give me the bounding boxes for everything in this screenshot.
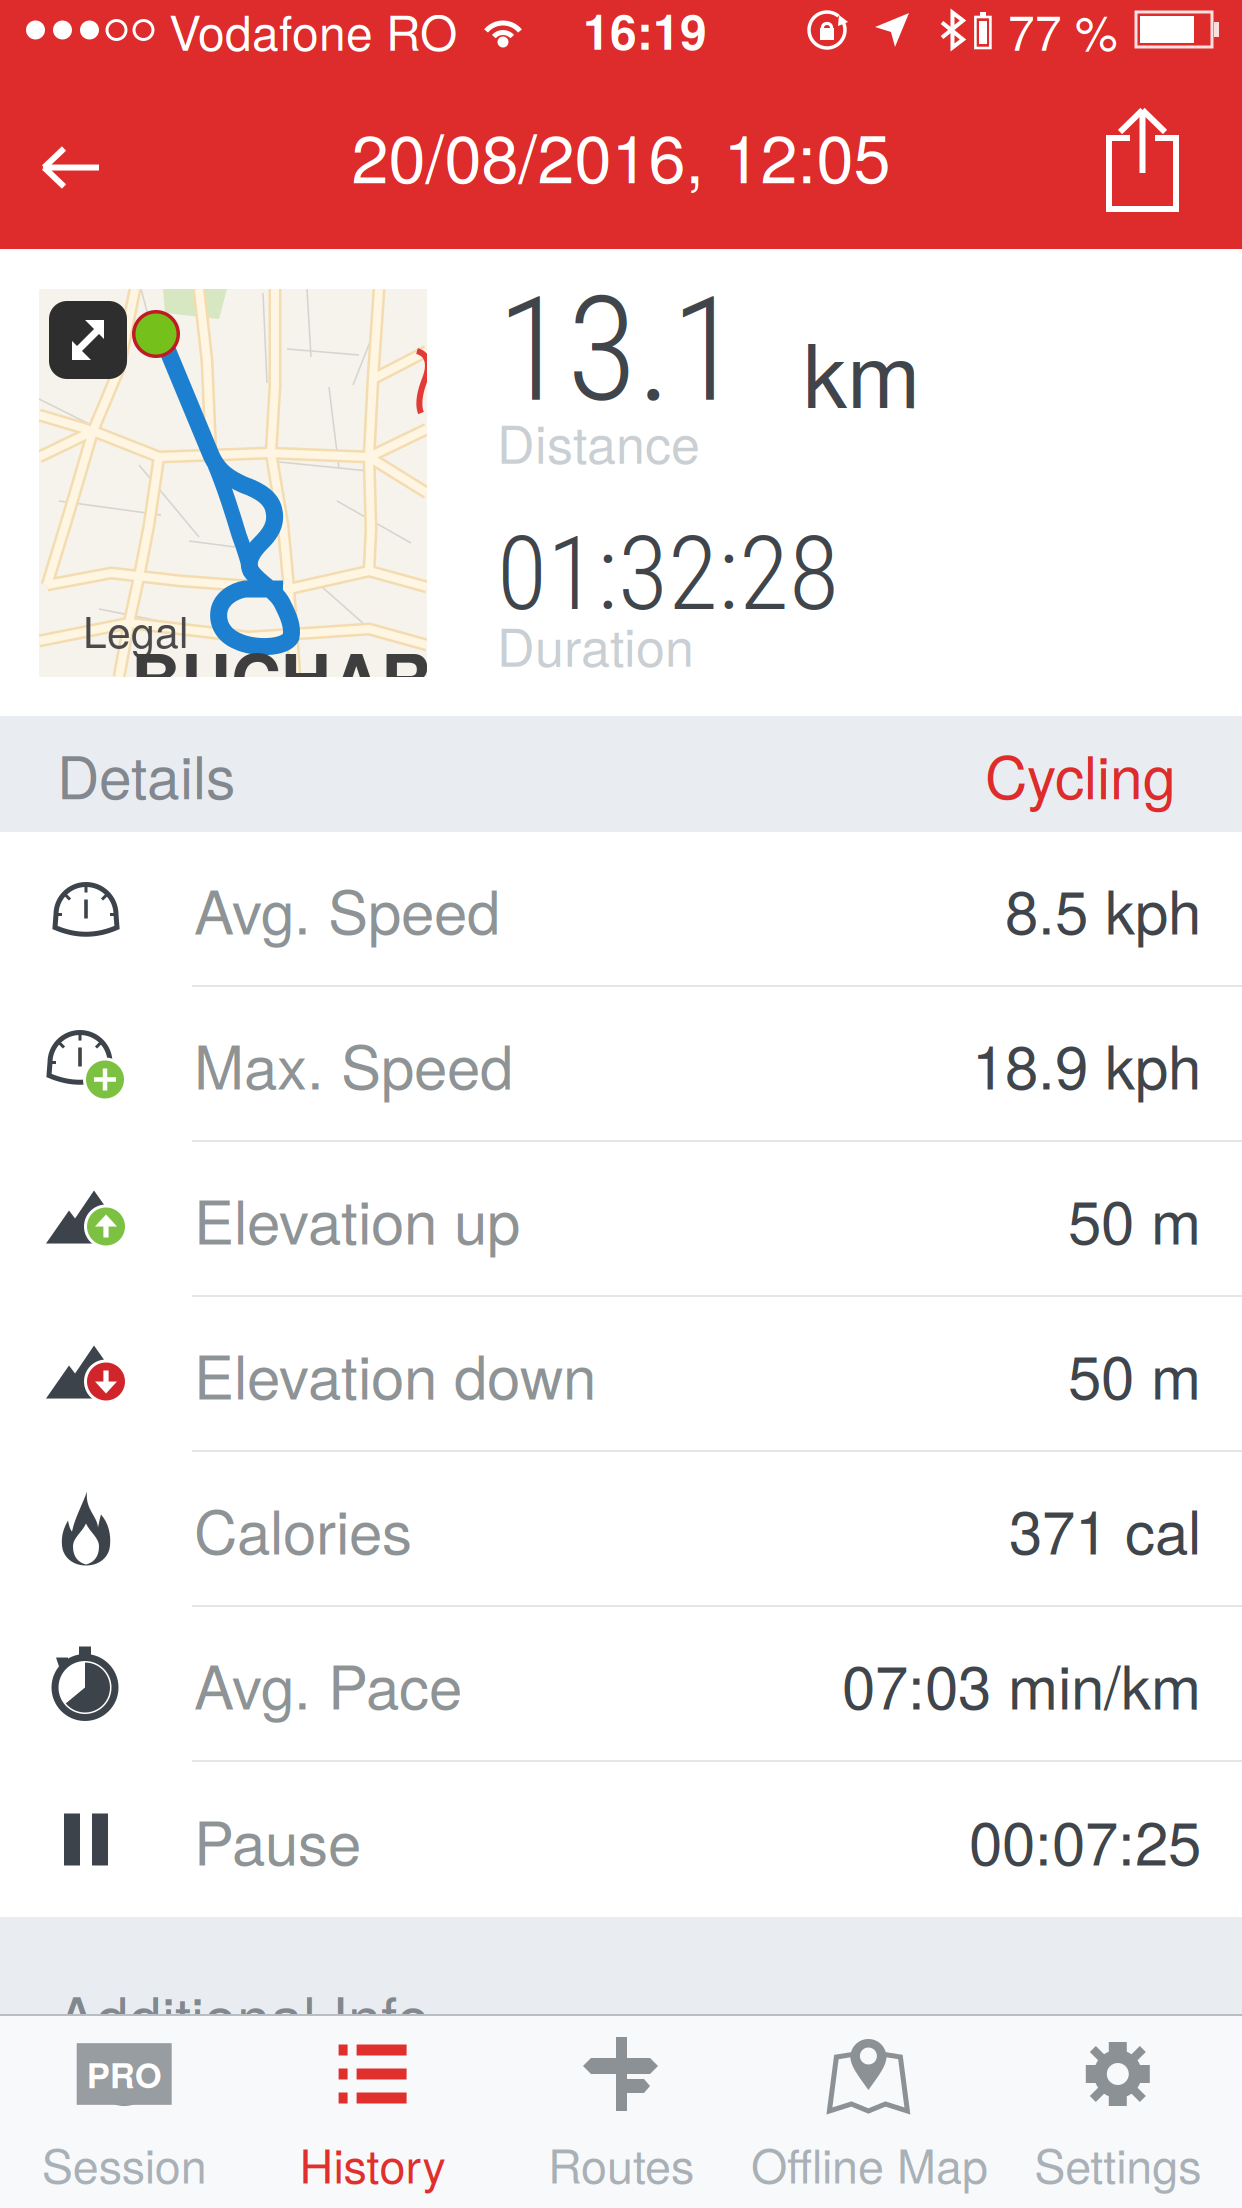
staticText: PRO <box>87 2049 162 2099</box>
button[interactable]: Max. Speed <box>0 987 1242 1142</box>
staticText: Pause <box>194 1796 361 1882</box>
staticText: Settings <box>1034 2130 1201 2197</box>
staticText: Duration <box>497 607 694 681</box>
staticText: 07:03 min/km <box>842 1640 1201 1726</box>
button[interactable]: Calories <box>0 1452 1242 1607</box>
staticText: 50 m <box>1068 1175 1201 1261</box>
staticText: Elevation up <box>194 1175 520 1261</box>
staticText: Legal <box>83 599 188 660</box>
staticText: Avg. Pace <box>194 1640 462 1726</box>
staticText: Max. Speed <box>194 1020 513 1106</box>
button[interactable]: Back <box>0 83 158 225</box>
button[interactable]: Offline Map <box>745 2016 994 2208</box>
staticText: 00:07:25 <box>969 1796 1201 1882</box>
staticText: 8.5 kph <box>1005 865 1201 951</box>
staticText: Calories <box>194 1485 412 1571</box>
button[interactable]: Settings <box>994 2016 1242 2208</box>
staticText: BUCHAREST <box>131 627 565 726</box>
staticText: Elevation down <box>194 1330 596 1416</box>
staticText: History <box>300 2130 446 2197</box>
staticText: 371 cal <box>1009 1485 1201 1571</box>
button[interactable]: Pause <box>0 1762 1242 1917</box>
button[interactable]: Show route on map <box>39 289 427 677</box>
staticText: Cycling <box>985 732 1176 816</box>
staticText: 18.9 kph <box>972 1020 1201 1106</box>
button[interactable]: Elevation down <box>0 1297 1242 1452</box>
staticText: Offline Map <box>751 2130 988 2197</box>
staticText: Session <box>42 2130 207 2197</box>
staticText: km <box>803 307 920 433</box>
staticText: 50 m <box>1068 1330 1201 1416</box>
button[interactable]: Share <box>1066 82 1242 227</box>
staticText: 01:32:28 <box>497 514 839 634</box>
staticText: Avg. Speed <box>194 865 500 951</box>
staticText: Additional Info <box>57 1973 430 2057</box>
staticText: Routes <box>548 2130 694 2197</box>
staticText: Distance <box>497 404 700 478</box>
button[interactable]: Routes <box>497 2016 745 2208</box>
staticText: 20/08/2016, 12:05 <box>351 107 890 202</box>
button[interactable]: Elevation up <box>0 1142 1242 1297</box>
button[interactable]: History <box>248 2016 497 2208</box>
button[interactable]: Avg. Pace <box>0 1607 1242 1762</box>
staticText: Vodafone RO <box>169 0 457 64</box>
staticText: Details <box>57 732 235 816</box>
staticText: 16:19 <box>583 0 707 64</box>
staticText: 77 % <box>1008 0 1118 64</box>
staticText: 13.1 <box>497 266 741 435</box>
button[interactable]: PRO <box>0 2016 248 2208</box>
button[interactable]: Avg. Speed <box>0 832 1242 987</box>
